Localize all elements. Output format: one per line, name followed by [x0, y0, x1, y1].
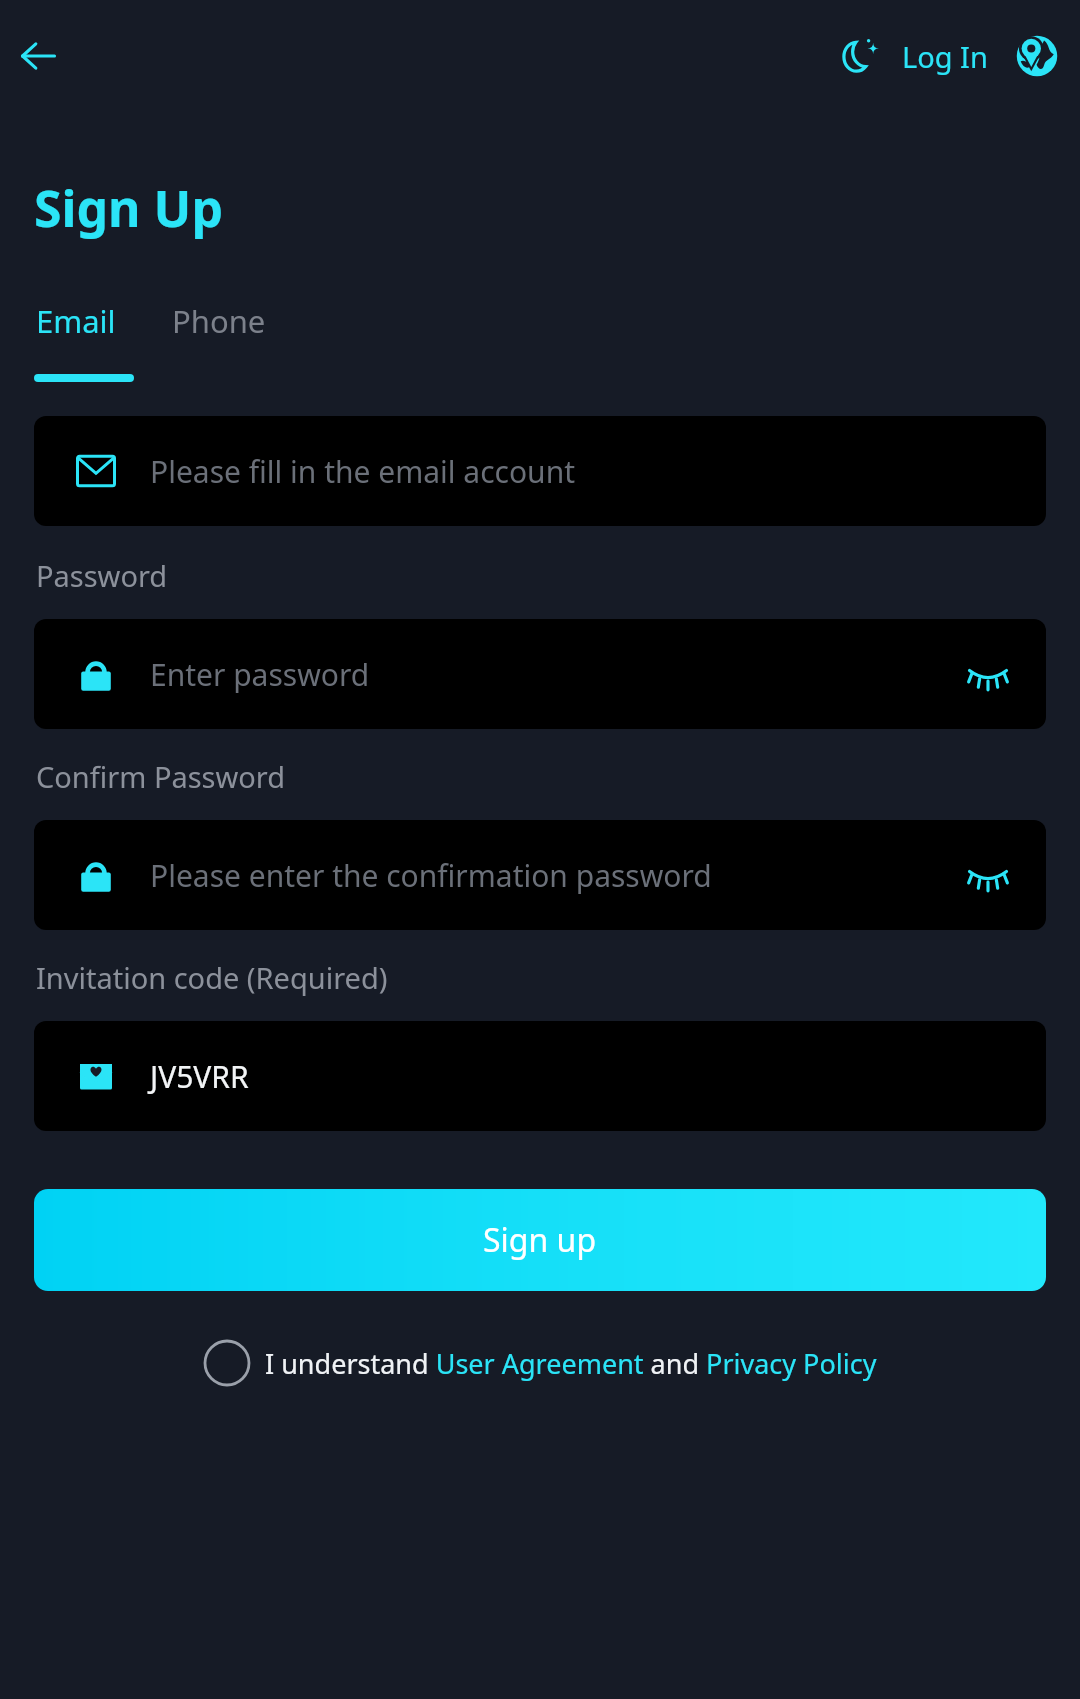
button[interactable]: Phone: [170, 298, 268, 344]
button[interactable]: Enter password: [34, 619, 1046, 729]
staticText: Invitation code (Required): [36, 958, 388, 997]
staticText: I understand User Agreement and Privacy …: [265, 1345, 877, 1382]
button[interactable]: Toggle password visibility: [954, 841, 1022, 909]
button[interactable]: Please fill in the email account: [34, 416, 1046, 526]
button[interactable]: Dark mode: [832, 27, 890, 85]
staticText: JV5VRR: [150, 1056, 249, 1097]
button[interactable]: Sign up: [34, 1189, 1046, 1291]
button[interactable]: Toggle password visibility: [954, 640, 1022, 708]
button[interactable]: I understand User Agreement and Privacy …: [0, 1339, 1080, 1387]
staticText: Log In: [902, 37, 988, 76]
staticText: Sign Up: [34, 174, 223, 242]
staticText: Please enter the confirmation password: [150, 855, 712, 896]
staticText: Please fill in the email account: [150, 451, 576, 492]
staticText: Enter password: [150, 654, 370, 695]
staticText: Confirm Password: [36, 757, 286, 796]
button[interactable]: JV5VRR: [34, 1021, 1046, 1131]
button[interactable]: Email: [34, 298, 118, 344]
button[interactable]: Please enter the confirmation password: [34, 820, 1046, 930]
button[interactable]: Language: [1008, 27, 1066, 85]
staticText: Phone: [172, 300, 266, 342]
button[interactable]: Log In: [894, 29, 996, 84]
staticText: Email: [36, 300, 116, 342]
staticText: Password: [36, 556, 168, 595]
button[interactable]: Back: [6, 24, 70, 88]
staticText: Sign up: [483, 1218, 597, 1262]
